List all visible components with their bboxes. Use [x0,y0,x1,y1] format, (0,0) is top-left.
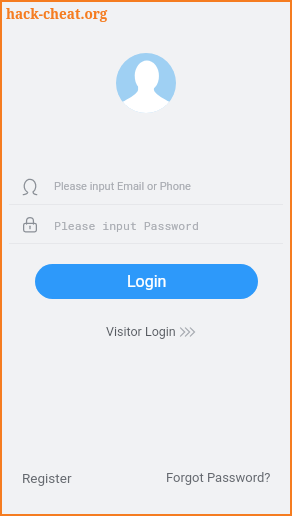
other: Account [23,177,37,197]
staticText: Visitor Login [106,324,176,339]
button[interactable]: Login [35,264,258,299]
other: Password [23,216,37,236]
button[interactable]: Forgot Password? [166,470,271,485]
staticText: Login [127,272,167,291]
button[interactable]: Visitor Login [100,320,204,343]
button[interactable]: Account [2,169,290,208]
button[interactable]: Password [2,208,290,247]
staticText: Please input Email or Phone [54,180,191,193]
staticText: hack-cheat.org [6,5,108,23]
button[interactable]: Register [22,470,72,486]
staticText: Please input Password [54,218,199,233]
